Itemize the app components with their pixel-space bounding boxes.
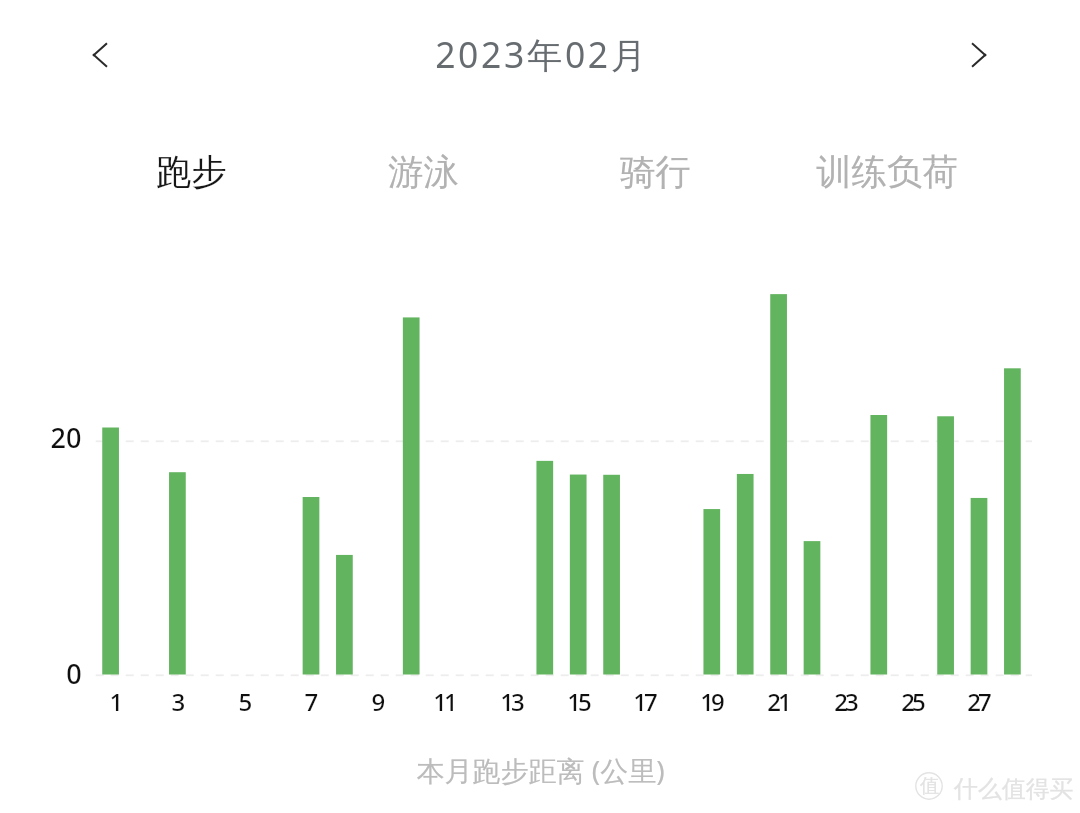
staticText: 7 xyxy=(250,685,370,718)
staticText: 值 xyxy=(920,774,939,798)
staticText: 13 xyxy=(451,685,571,718)
staticText: 什么值得买 xyxy=(954,774,1074,804)
button[interactable]: 游泳 xyxy=(313,142,533,202)
button[interactable]: 跑步 xyxy=(81,142,301,202)
staticText: 15 xyxy=(518,685,638,718)
staticText: 9 xyxy=(317,685,437,718)
staticText: 19 xyxy=(651,685,771,718)
staticText: 训练负荷 xyxy=(816,150,958,195)
staticText: 游泳 xyxy=(388,150,459,195)
staticText: 21 xyxy=(718,685,838,718)
button[interactable]: 骑行 xyxy=(545,142,765,202)
button[interactable]: Previous month xyxy=(75,30,125,80)
staticText: 本月跑步距离 (公里) xyxy=(416,751,665,789)
staticText: 5 xyxy=(184,685,304,718)
staticText: 11 xyxy=(384,685,504,718)
staticText: 1 xyxy=(55,685,175,718)
staticText: 23 xyxy=(785,685,905,718)
staticText: 3 xyxy=(117,685,237,718)
staticText: 0 xyxy=(14,655,134,692)
staticText: 17 xyxy=(584,685,704,718)
button[interactable]: Next month xyxy=(954,30,1004,80)
staticText: 20 xyxy=(6,419,126,456)
staticText: 跑步 xyxy=(156,150,227,195)
staticText: 27 xyxy=(918,685,1038,718)
staticText: 25 xyxy=(852,685,972,718)
button[interactable]: 训练负荷 xyxy=(777,142,997,202)
staticText: 骑行 xyxy=(620,150,691,195)
staticText: 2023年02月 xyxy=(435,30,649,78)
